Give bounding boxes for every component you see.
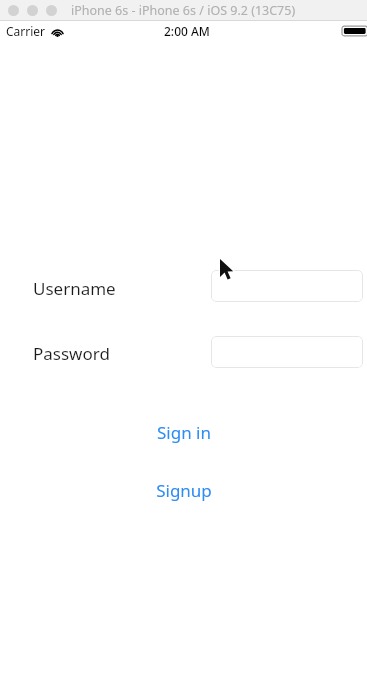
- button[interactable]: Close: [8, 5, 19, 16]
- button[interactable]: Zoom: [46, 5, 57, 16]
- staticText: Sign in: [157, 421, 211, 444]
- staticText: Carrier: [6, 23, 46, 39]
- button[interactable]: Minimize: [27, 5, 38, 16]
- staticText: 2:00 AM: [164, 23, 210, 39]
- button[interactable]: Sign in: [0, 419, 367, 445]
- staticText: Signup: [156, 479, 212, 502]
- staticText: Username: [33, 277, 116, 300]
- staticText: iPhone 6s - iPhone 6s / iOS 9.2 (13C75): [71, 2, 296, 19]
- button[interactable]: Signup: [0, 477, 367, 503]
- staticText: Password: [33, 342, 110, 365]
- button[interactable]: Username input: [211, 270, 363, 302]
- button[interactable]: Password input: [211, 336, 363, 368]
